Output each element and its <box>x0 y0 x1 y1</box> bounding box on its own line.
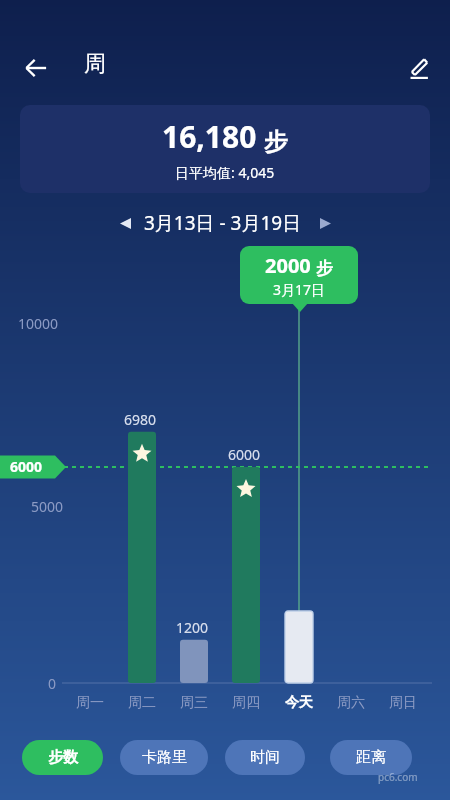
staticText: 周六 <box>337 694 365 712</box>
staticText: 16,180 <box>162 116 257 157</box>
button[interactable]: 今天 <box>275 692 323 714</box>
button[interactable]: 周一 <box>66 692 114 714</box>
staticText: 5000 <box>31 497 64 516</box>
staticText: 2000 <box>265 252 311 279</box>
staticText: 6000 <box>10 457 43 476</box>
staticText: 6980 <box>124 410 157 429</box>
staticText: 卡路里 <box>142 748 187 767</box>
staticText: 步 <box>264 127 288 157</box>
button[interactable]: Previous week <box>110 208 140 238</box>
staticText: 3月17日 <box>273 280 326 299</box>
button[interactable]: 步数 <box>22 740 103 775</box>
button[interactable]: 距离 <box>330 740 412 775</box>
button[interactable]: Back <box>14 46 58 90</box>
staticText: 3月13日 - 3月19日 <box>144 210 302 236</box>
button[interactable]: 周日 <box>379 692 427 714</box>
staticText: 10000 <box>18 314 59 333</box>
staticText: 1200 <box>176 618 209 637</box>
button[interactable]: 时间 <box>225 740 305 775</box>
button[interactable]: 周二 <box>118 692 166 714</box>
staticText: 距离 <box>356 748 386 767</box>
staticText: 6000 <box>228 445 261 464</box>
staticText: 周 <box>84 50 106 78</box>
staticText: 周三 <box>180 694 208 712</box>
staticText: 日平均值: 4,045 <box>175 163 275 182</box>
staticText: 周日 <box>389 694 417 712</box>
staticText: 周四 <box>232 694 260 712</box>
staticText: 0 <box>48 674 57 693</box>
button[interactable]: 16,180 <box>20 105 430 193</box>
staticText: 步 <box>316 258 333 279</box>
button[interactable]: 周三 <box>170 692 218 714</box>
staticText: 步数 <box>48 748 78 767</box>
staticText: 今天 <box>285 694 313 712</box>
button[interactable]: 周六 <box>327 692 375 714</box>
staticText: 周二 <box>128 694 156 712</box>
button[interactable]: Edit <box>396 46 440 90</box>
button[interactable]: 卡路里 <box>120 740 208 775</box>
staticText: pc6.com <box>378 770 418 784</box>
staticText: 时间 <box>250 748 280 767</box>
staticText: 周一 <box>76 694 104 712</box>
button[interactable]: 周四 <box>222 692 270 714</box>
button[interactable]: Next week <box>310 208 340 238</box>
